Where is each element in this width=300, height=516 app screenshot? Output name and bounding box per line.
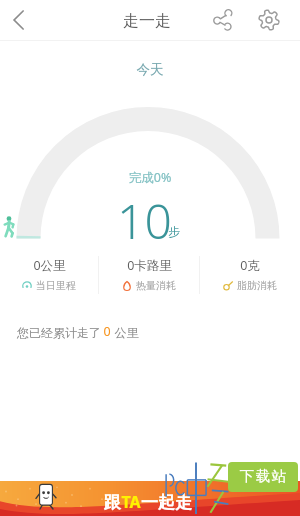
staticText: 公里 <box>111 324 139 340</box>
staticText: 10 <box>117 188 172 253</box>
staticText: 0公里 <box>33 257 66 274</box>
button[interactable]: 0公里 <box>0 254 98 294</box>
staticText: 0克 <box>240 257 260 274</box>
staticText: 热量消耗 <box>136 279 176 292</box>
staticText: 下载站 <box>239 467 287 485</box>
staticText: 走一走 <box>123 11 171 31</box>
staticText: TA <box>121 491 141 513</box>
staticText: 当日里程 <box>36 279 76 292</box>
button[interactable]: 跟 <box>0 481 300 516</box>
staticText: 完成0% <box>0 169 300 186</box>
button[interactable]: Settings <box>250 0 287 39</box>
staticText: 0卡路里 <box>127 257 172 274</box>
button[interactable]: Back <box>0 0 36 39</box>
staticText: 一起走 <box>141 492 192 513</box>
staticText: 跟 <box>104 492 121 513</box>
staticText: 脂肪消耗 <box>237 279 277 292</box>
button[interactable]: 0卡路里 <box>99 254 199 294</box>
staticText: 步 <box>168 224 180 239</box>
button[interactable]: 0克 <box>200 254 300 294</box>
staticText: 今天 <box>0 61 300 78</box>
button[interactable]: Share <box>204 0 240 39</box>
staticText: 0 <box>103 323 111 340</box>
staticText: 您已经累计走了 <box>15 324 103 340</box>
